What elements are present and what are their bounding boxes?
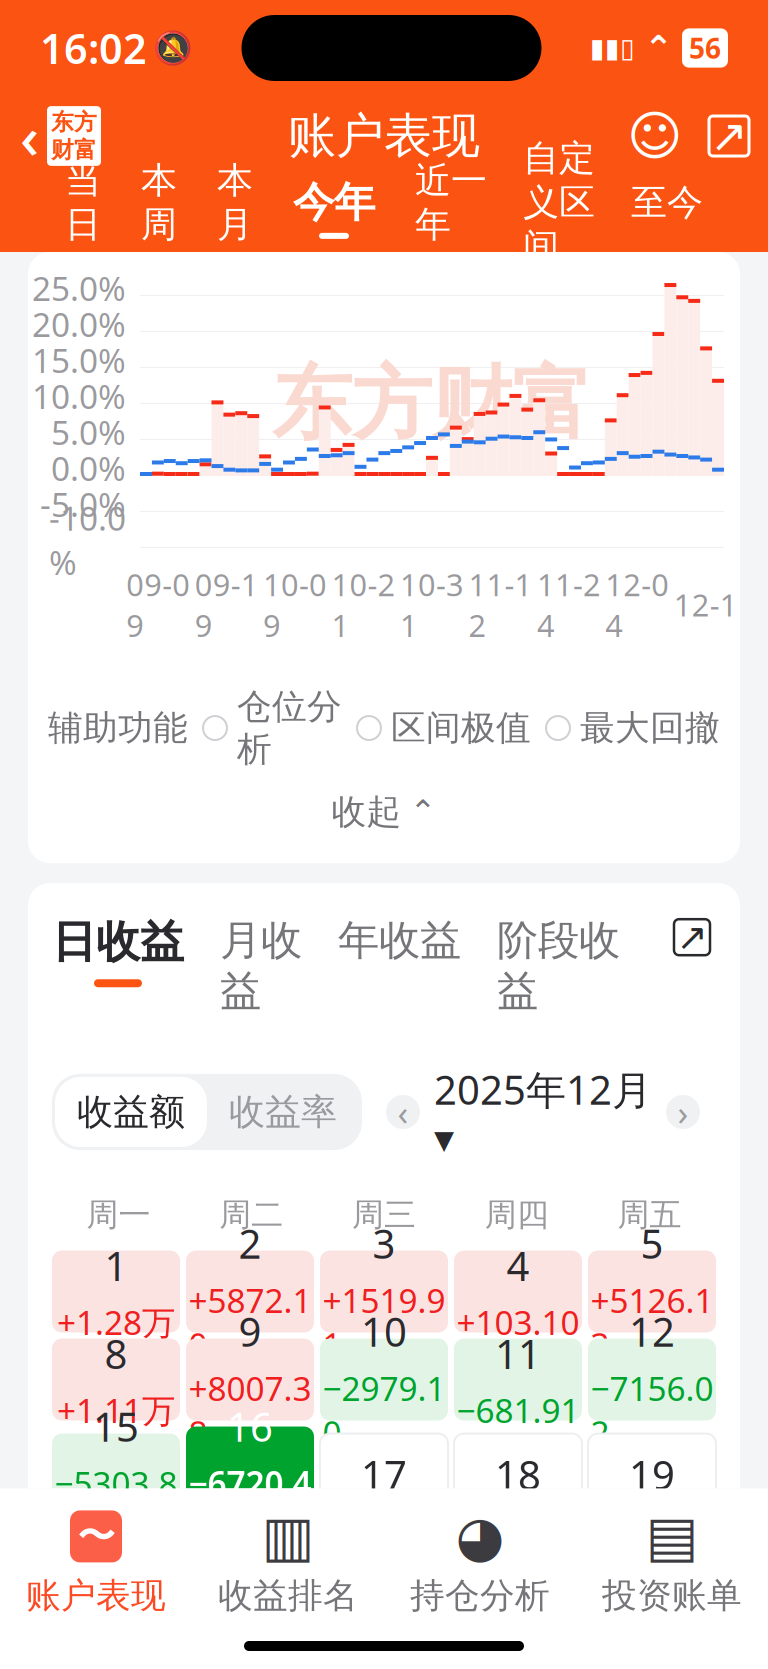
button[interactable]: ◕: [384, 1502, 576, 1623]
button[interactable]: 8: [52, 1339, 180, 1421]
staticText: -10.0%: [49, 496, 126, 584]
staticText: 0.0%: [51, 446, 126, 490]
button[interactable]: 2025年12月 ▾: [434, 1063, 652, 1161]
button[interactable]: 16: [186, 1427, 314, 1523]
staticText: 2: [238, 1217, 261, 1270]
staticText: 16: [227, 1400, 273, 1453]
button[interactable]: 本月: [197, 176, 273, 240]
button[interactable]: 10: [320, 1339, 448, 1421]
staticText: 10-21: [332, 564, 396, 645]
button[interactable]: 分享收益: [674, 915, 716, 955]
button[interactable]: 1: [52, 1251, 180, 1333]
button[interactable]: ▥: [192, 1502, 384, 1623]
button[interactable]: 客服: [620, 96, 690, 176]
button[interactable]: 30: [186, 1617, 314, 1669]
button[interactable]: 区间极值: [357, 707, 531, 749]
staticText: ☺: [627, 106, 683, 166]
button[interactable]: 今年: [273, 176, 395, 240]
staticText: 周四: [485, 1195, 549, 1234]
button[interactable]: 31: [320, 1617, 448, 1669]
staticText: 1: [506, 1606, 529, 1660]
staticText: 近一年: [415, 158, 487, 247]
staticText: 09-09: [126, 564, 190, 645]
staticText: ⌃: [409, 794, 436, 830]
button[interactable]: 1: [454, 1617, 582, 1669]
button[interactable]: 12: [588, 1339, 716, 1421]
button[interactable]: 月收益: [220, 915, 338, 1035]
button[interactable]: 3: [320, 1251, 448, 1333]
button[interactable]: 当日: [45, 176, 121, 240]
button[interactable]: 25: [454, 1529, 582, 1611]
button[interactable]: 分享: [690, 96, 768, 176]
button[interactable]: 4: [454, 1251, 582, 1333]
staticText: ‹: [20, 97, 39, 175]
button[interactable]: 收起: [28, 771, 740, 853]
button[interactable]: 11: [454, 1339, 582, 1421]
staticText: 东方财富: [272, 355, 592, 453]
button[interactable]: 23: [186, 1529, 314, 1611]
button[interactable]: 2: [186, 1251, 314, 1333]
staticText: +5872.10: [188, 1278, 311, 1366]
button[interactable]: 15: [52, 1434, 180, 1516]
button[interactable]: 18: [454, 1434, 582, 1516]
staticText: 4: [506, 1239, 529, 1292]
staticText: −681.91: [456, 1388, 579, 1432]
button[interactable]: ▤: [576, 1502, 768, 1623]
staticText: 11-12: [468, 564, 532, 645]
staticText: ▥: [261, 1505, 314, 1568]
button[interactable]: 收益率: [207, 1077, 359, 1147]
staticText: +1.28万: [57, 1300, 175, 1344]
button[interactable]: 上个月: [386, 1095, 420, 1129]
staticText: 本月: [217, 158, 253, 247]
button[interactable]: 本周: [121, 176, 197, 240]
staticText: 周三: [352, 1195, 416, 1234]
button[interactable]: 仓位分析: [203, 685, 342, 771]
button[interactable]: 至今: [611, 176, 723, 240]
staticText: 1: [104, 1239, 127, 1292]
staticText: 收益额: [77, 1090, 185, 1134]
button[interactable]: 近一年: [395, 176, 507, 240]
button[interactable]: 〜: [0, 1502, 192, 1623]
button[interactable]: 9: [186, 1339, 314, 1421]
staticText: 12-04: [605, 564, 669, 645]
staticText: ‹: [397, 1089, 408, 1135]
staticText: 收起: [331, 791, 401, 833]
button[interactable]: 24: [320, 1529, 448, 1611]
staticText: 辅助功能: [48, 707, 188, 749]
staticText: 最大回撤: [580, 707, 720, 749]
staticText: ↗: [676, 916, 707, 958]
staticText: 10-31: [400, 564, 464, 645]
button[interactable]: 最大回撤: [546, 707, 720, 749]
staticText: 月收益: [220, 915, 302, 1017]
staticText: +5126.13: [590, 1278, 713, 1366]
staticText: 20.0%: [32, 302, 126, 346]
button[interactable]: 自定义区间: [507, 176, 611, 240]
staticText: 10: [361, 1305, 407, 1358]
button[interactable]: 19: [588, 1434, 716, 1516]
button[interactable]: 5: [588, 1251, 716, 1333]
staticText: ↗: [710, 110, 748, 162]
staticText: 至今: [631, 180, 703, 225]
staticText: 56: [689, 29, 721, 67]
button[interactable]: 22: [52, 1529, 180, 1611]
staticText: 周一: [86, 1195, 150, 1234]
button[interactable]: 日收益: [52, 915, 220, 987]
button[interactable]: 下个月: [666, 1095, 700, 1129]
button[interactable]: 17: [320, 1434, 448, 1516]
button[interactable]: 收益额: [55, 1077, 207, 1147]
staticText: 本周: [141, 158, 177, 247]
button[interactable]: 26: [588, 1529, 716, 1611]
button[interactable]: 阶段收益: [497, 915, 656, 1035]
staticText: 12-1: [674, 584, 738, 625]
staticText: 阶段收益: [497, 915, 620, 1017]
staticText: 年收益: [338, 915, 461, 966]
button[interactable]: 年收益: [338, 915, 497, 984]
button[interactable]: 返回 东方财富: [0, 96, 121, 176]
staticText: 11-24: [537, 564, 601, 645]
staticText: 周五: [618, 1195, 682, 1234]
staticText: 🔕: [153, 30, 193, 66]
staticText: 19: [629, 1448, 675, 1501]
